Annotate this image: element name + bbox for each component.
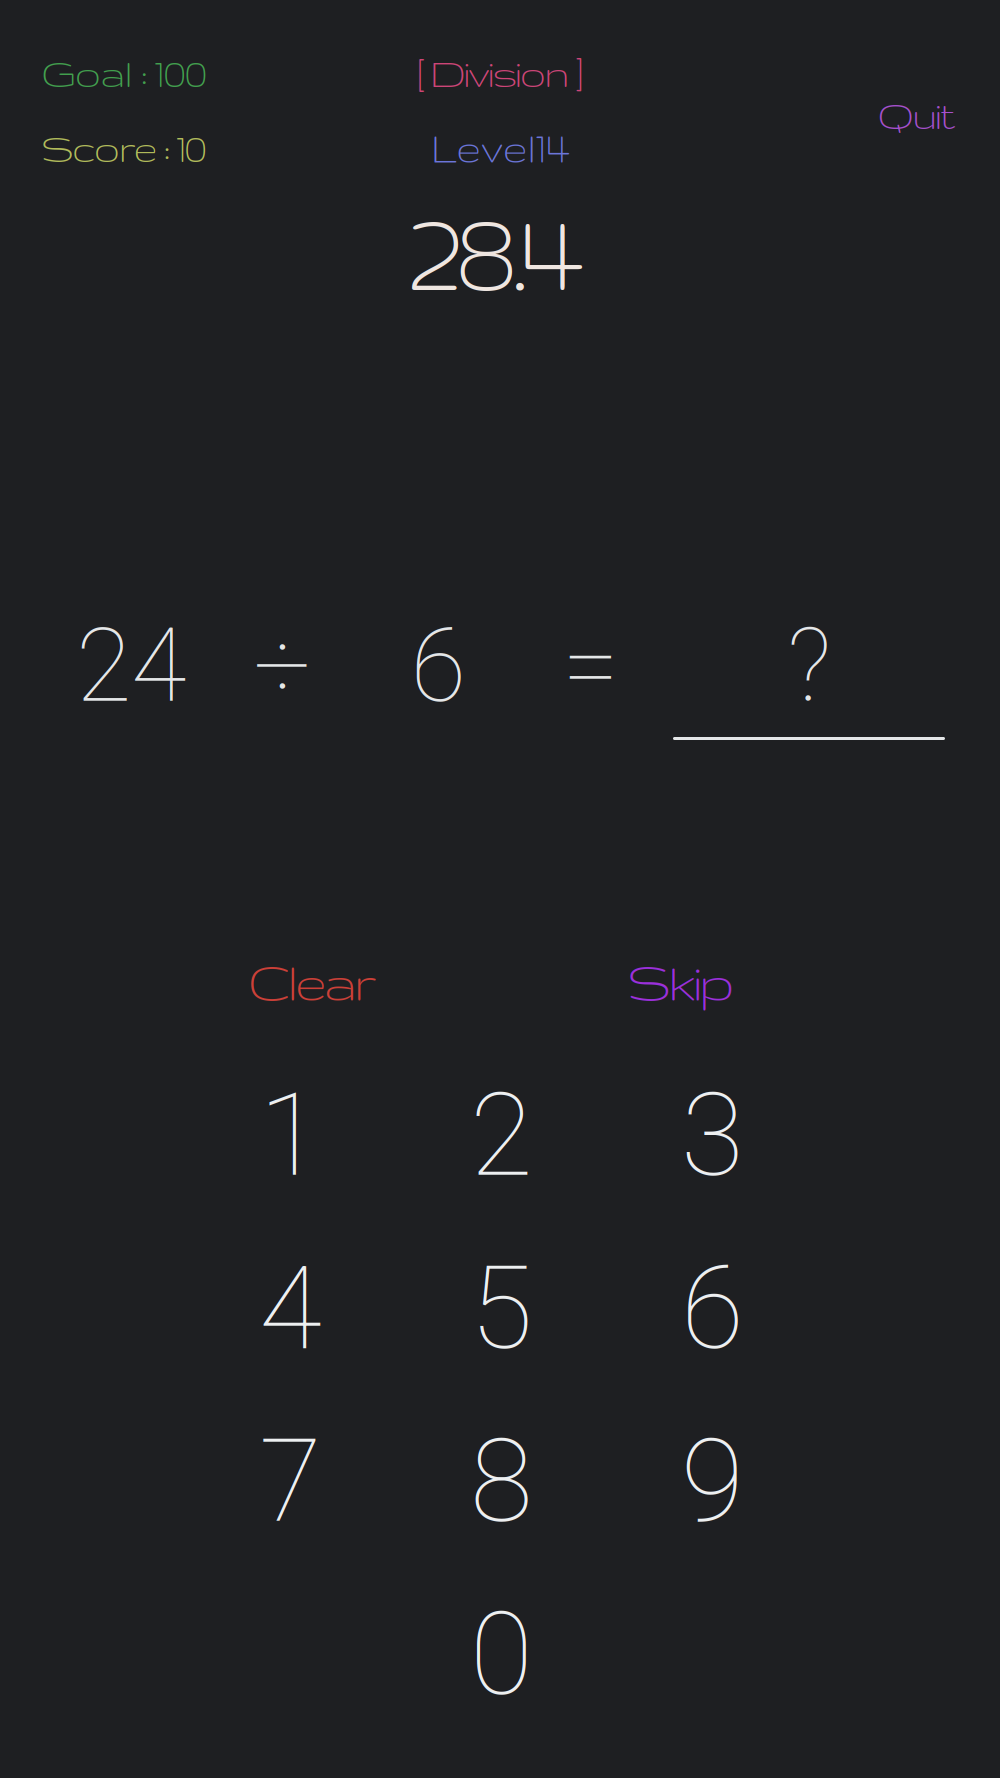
button[interactable]: 1 xyxy=(185,1049,396,1222)
button[interactable]: 8 xyxy=(396,1395,607,1568)
staticText: 1 xyxy=(259,1068,322,1203)
staticText: 6 xyxy=(681,1241,744,1376)
button[interactable]: 6 xyxy=(607,1222,818,1395)
staticText: Goal : 100 xyxy=(41,52,208,94)
staticText: 4 xyxy=(259,1241,322,1376)
staticText: 9 xyxy=(681,1414,744,1549)
button[interactable]: 2 xyxy=(396,1049,607,1222)
staticText: 8 xyxy=(470,1414,533,1549)
staticText: Skip xyxy=(627,954,735,1010)
staticText: Clear xyxy=(247,954,376,1010)
button[interactable]: 4 xyxy=(185,1222,396,1395)
staticText: 28.4 xyxy=(407,192,582,310)
button[interactable]: 5 xyxy=(396,1222,607,1395)
staticText: 6 xyxy=(410,607,465,725)
staticText: 24 xyxy=(76,607,186,725)
button[interactable]: Skip xyxy=(591,942,771,1022)
staticText: 0 xyxy=(470,1587,533,1722)
button[interactable]: 7 xyxy=(185,1395,396,1568)
staticText: ÷ xyxy=(253,607,310,725)
staticText: ? xyxy=(787,607,831,725)
staticText: Level14 xyxy=(431,126,569,170)
staticText: 5 xyxy=(470,1241,533,1376)
button[interactable]: Quit xyxy=(846,81,986,149)
staticText: Score : 10 xyxy=(41,127,207,169)
button[interactable]: Clear xyxy=(212,942,412,1022)
staticText: = xyxy=(562,607,619,725)
button[interactable]: 9 xyxy=(607,1395,818,1568)
staticText: 3 xyxy=(681,1068,744,1203)
staticText: [ Division ] xyxy=(417,52,583,94)
button[interactable]: 3 xyxy=(607,1049,818,1222)
button[interactable]: 0 xyxy=(396,1568,607,1741)
staticText: 7 xyxy=(259,1414,322,1549)
staticText: Quit xyxy=(877,94,955,136)
staticText: 2 xyxy=(470,1068,533,1203)
